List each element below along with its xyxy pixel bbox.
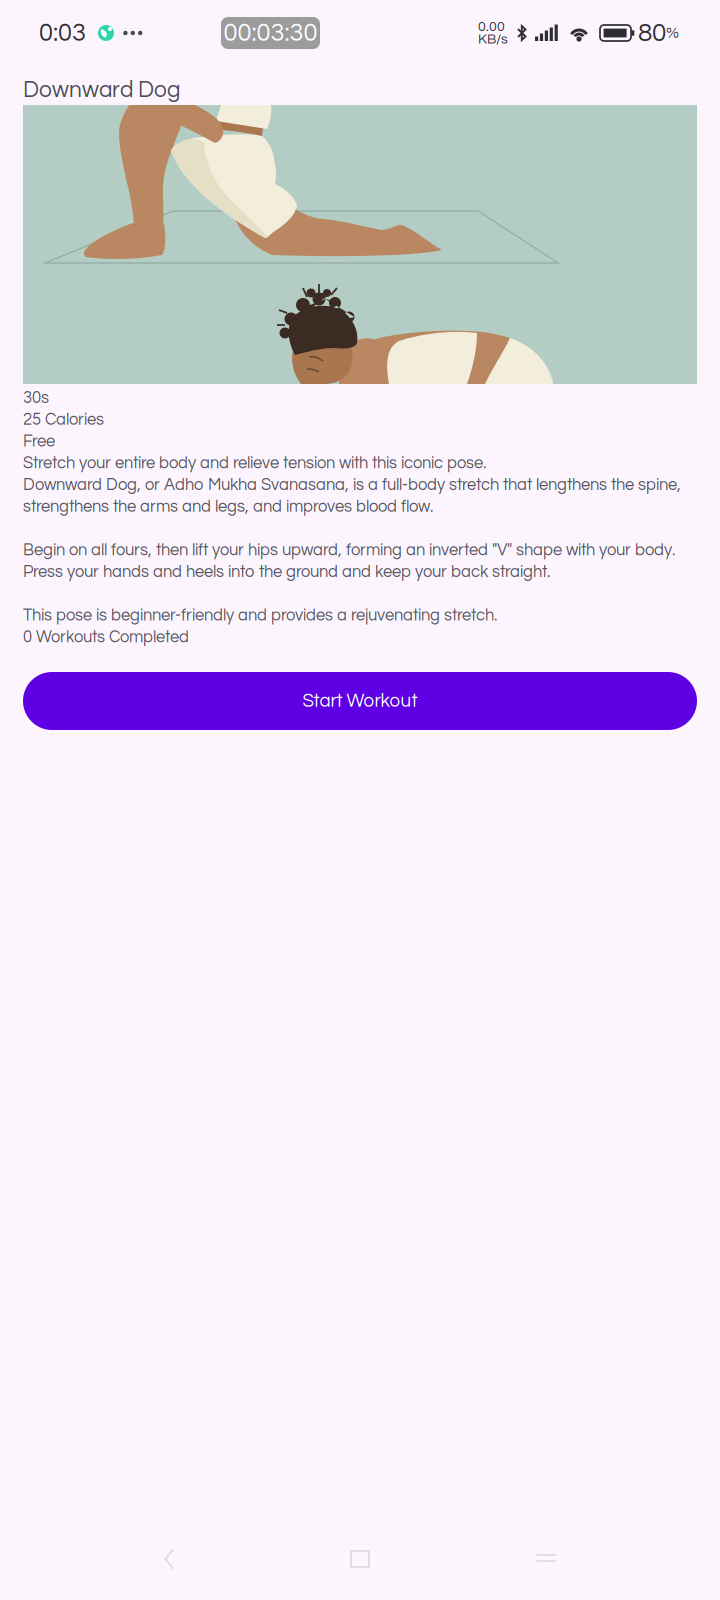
staticText: 0:03 — [39, 20, 86, 46]
staticText: 30s — [23, 389, 49, 406]
staticText: KB/s — [478, 32, 508, 46]
staticText: Downward Dog, or Adho Mukha Svanasana, i… — [23, 476, 681, 493]
staticText: Free — [23, 433, 55, 450]
staticText: Press your hands and heels into the grou… — [23, 563, 550, 580]
staticText: strengthens the arms and legs, and impro… — [23, 498, 433, 515]
staticText: Downward Dog — [23, 78, 180, 102]
staticText: 80 — [638, 20, 666, 46]
staticText: Start Workout — [302, 691, 417, 711]
staticText: 25 Calories — [23, 411, 104, 428]
button[interactable]: Back — [160, 1546, 186, 1572]
button[interactable]: Start Workout — [23, 672, 697, 730]
staticText: Begin on all fours, then lift your hips … — [23, 542, 675, 559]
staticText: 00:03:30 — [223, 20, 317, 46]
button[interactable]: Recents — [533, 1546, 559, 1572]
staticText: % — [666, 25, 679, 41]
staticText: 0 Workouts Completed — [23, 629, 189, 646]
button[interactable]: Home — [347, 1546, 373, 1572]
staticText: This pose is beginner-friendly and provi… — [23, 607, 497, 624]
staticText: 0.00 — [478, 20, 505, 34]
staticText: Stretch your entire body and relieve ten… — [23, 455, 486, 472]
